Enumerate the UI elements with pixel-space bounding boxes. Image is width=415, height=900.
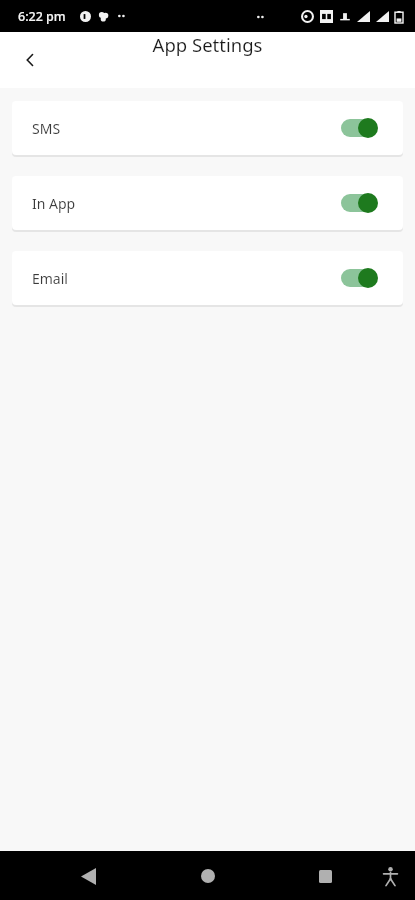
staticText: Email [32, 269, 68, 288]
staticText: 6:22 pm [18, 8, 66, 25]
button[interactable]: In App [12, 176, 403, 230]
button[interactable]: Email [12, 251, 403, 305]
button[interactable]: Home [190, 858, 226, 894]
button[interactable]: SMS [12, 101, 403, 155]
staticText: In App [32, 194, 76, 213]
button[interactable]: Back [70, 858, 106, 894]
button[interactable]: Toggle [339, 266, 379, 290]
button[interactable]: Recents [307, 858, 343, 894]
staticText: SMS [32, 119, 61, 138]
button[interactable]: Accessibility [374, 860, 406, 892]
button[interactable]: Toggle [339, 116, 379, 140]
staticText: App Settings [0, 32, 415, 57]
button[interactable]: Back [14, 44, 46, 76]
button[interactable]: Toggle [339, 191, 379, 215]
